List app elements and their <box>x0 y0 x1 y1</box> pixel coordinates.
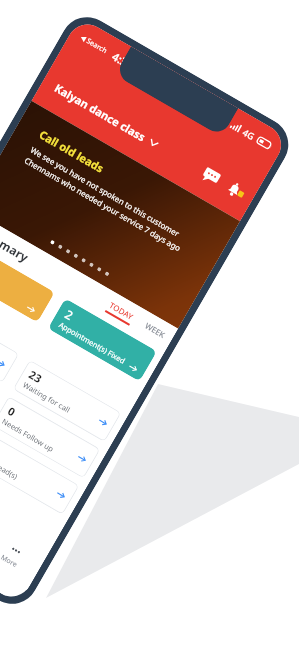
button[interactable]: TODAY <box>105 299 136 326</box>
staticText: Appointment(s) Fixed <box>57 319 127 366</box>
button[interactable]: More <box>0 520 50 590</box>
button[interactable]: WEEK <box>143 320 168 340</box>
staticText: Needs Follow up <box>0 416 56 454</box>
staticText: 0 <box>5 403 19 420</box>
button[interactable]: Messages <box>200 165 223 188</box>
staticText: Summary <box>0 222 32 265</box>
staticText: Waiting for call <box>21 380 72 415</box>
button[interactable]: Kalyan dance class <box>52 80 161 152</box>
staticText: We see you have not spoken to this custo… <box>22 144 208 265</box>
button[interactable]: Notifications <box>224 179 247 202</box>
staticText: 23 <box>26 367 45 386</box>
staticText: Kalyan dance class <box>52 80 149 145</box>
button[interactable]: 23 <box>13 360 121 442</box>
button[interactable]: 5 <box>0 432 79 515</box>
button[interactable]: 5 <box>0 240 55 322</box>
staticText: 4G <box>241 126 257 142</box>
staticText: New lead(s) <box>0 452 20 482</box>
button[interactable]: 12 <box>0 301 19 383</box>
button[interactable]: Call old leads <box>0 101 240 329</box>
staticText: Search <box>84 36 109 56</box>
button[interactable]: 0 <box>0 396 100 478</box>
staticText: 2 <box>62 306 76 323</box>
staticText: TODAY <box>108 299 136 322</box>
staticText: 4:38 <box>109 49 136 73</box>
button[interactable]: 2 <box>48 298 157 381</box>
staticText: Call old leads <box>37 127 107 176</box>
staticText: More <box>0 553 19 570</box>
